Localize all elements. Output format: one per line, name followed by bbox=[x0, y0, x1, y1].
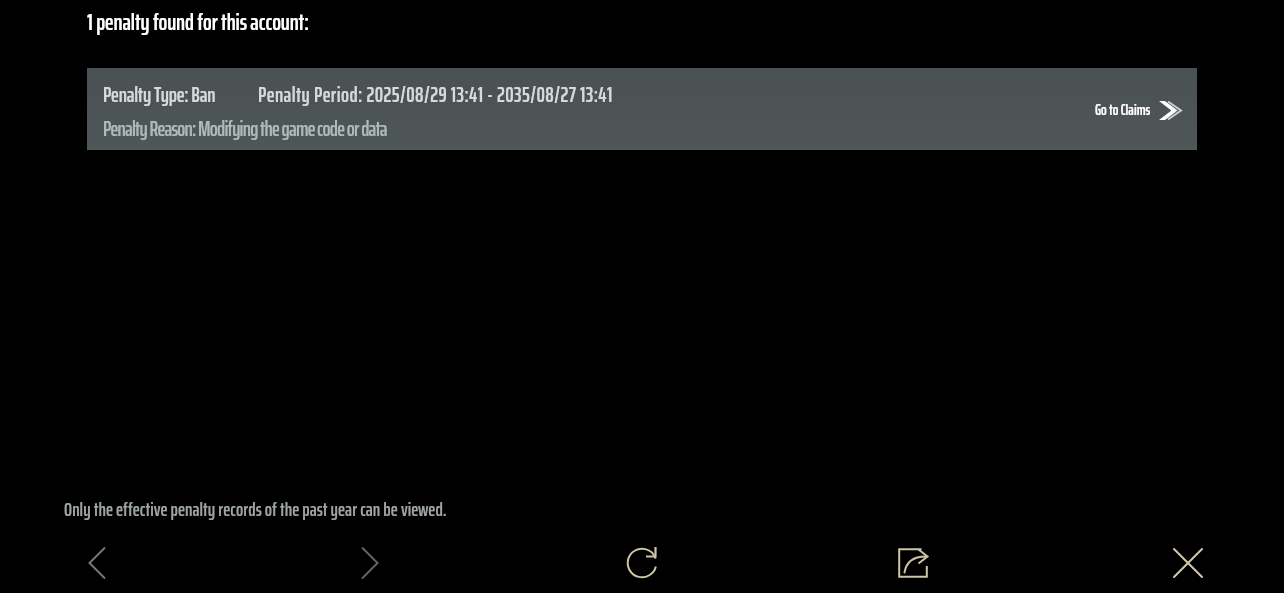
staticText: Only the effective penalty records of th… bbox=[64, 494, 447, 524]
staticText: Go to Claims bbox=[1095, 98, 1151, 122]
button[interactable]: Share bbox=[890, 540, 936, 586]
staticText: Penalty Type: Ban bbox=[103, 78, 216, 111]
button[interactable]: Go to Claims bbox=[1095, 98, 1182, 122]
button[interactable]: Close bbox=[1165, 540, 1211, 586]
button[interactable]: Back bbox=[74, 540, 120, 586]
button[interactable]: Forward bbox=[347, 540, 393, 586]
button[interactable]: Refresh bbox=[619, 540, 665, 586]
staticText: 1 penalty found for this account: bbox=[87, 4, 309, 40]
staticText: Penalty Period: 2025/08/29 13:41 - 2035/… bbox=[258, 78, 613, 111]
button[interactable]: Penalty Type: Ban bbox=[87, 68, 1197, 150]
staticText: Penalty Reason: Modifying the game code … bbox=[103, 112, 387, 145]
